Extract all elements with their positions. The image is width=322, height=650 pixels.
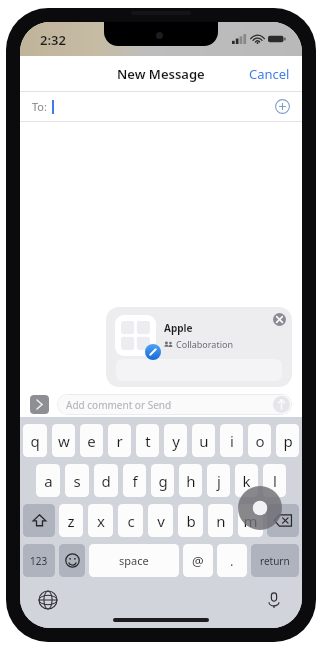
staticText: b	[186, 511, 196, 531]
button[interactable]: Emoji	[59, 544, 85, 577]
button[interactable]: k	[235, 464, 258, 497]
staticText: Apple	[164, 321, 193, 335]
staticText: i	[230, 431, 234, 451]
button[interactable]: Add contact	[275, 99, 290, 114]
staticText: .	[230, 552, 234, 570]
button[interactable]: Apple	[106, 307, 292, 387]
staticText: q	[30, 431, 40, 451]
button[interactable]: Remove attachment	[273, 313, 286, 326]
button[interactable]: @	[183, 544, 213, 577]
button[interactable]: f	[123, 464, 146, 497]
staticText: @	[192, 552, 204, 570]
staticText: 123	[30, 554, 48, 568]
button[interactable]: h	[179, 464, 202, 497]
button[interactable]: .	[217, 544, 247, 577]
button[interactable]: l	[263, 464, 286, 497]
staticText: d	[101, 471, 111, 491]
button[interactable]: p	[276, 424, 299, 457]
staticText: a	[44, 471, 53, 491]
button[interactable]: e	[80, 424, 103, 457]
staticText: space	[119, 553, 149, 568]
staticText: g	[158, 471, 168, 491]
staticText: y	[172, 431, 180, 451]
staticText: New Message	[117, 65, 205, 83]
button[interactable]: o	[248, 424, 271, 457]
button[interactable]: q	[23, 424, 47, 457]
button[interactable]: y	[164, 424, 187, 457]
button[interactable]: g	[151, 464, 174, 497]
button[interactable]: Shift	[23, 504, 55, 537]
staticText: u	[199, 431, 209, 451]
button[interactable]: s	[65, 464, 89, 497]
button[interactable]: t	[136, 424, 159, 457]
staticText: x	[97, 511, 105, 531]
button[interactable]: i	[220, 424, 243, 457]
staticText: r	[116, 431, 123, 451]
button[interactable]: v	[148, 504, 173, 537]
other: Send	[273, 396, 290, 413]
staticText: Cancel	[249, 65, 290, 83]
button[interactable]: d	[94, 464, 118, 497]
staticText: Add comment or Send	[66, 398, 172, 412]
button[interactable]: Cancel	[237, 59, 302, 89]
staticText: 2:32	[40, 31, 66, 49]
staticText: o	[255, 431, 265, 451]
staticText: f	[132, 471, 138, 491]
staticText: t	[145, 431, 151, 451]
button[interactable]: a	[36, 464, 60, 497]
button[interactable]: b	[178, 504, 203, 537]
button[interactable]: n	[208, 504, 233, 537]
staticText: c	[127, 511, 135, 531]
button[interactable]: u	[192, 424, 215, 457]
button[interactable]: Apps	[30, 395, 49, 414]
staticText: h	[186, 471, 196, 491]
staticText: m	[243, 511, 258, 531]
staticText: j	[217, 471, 221, 491]
button[interactable]: r	[108, 424, 131, 457]
button[interactable]: Backspace	[267, 504, 299, 537]
button[interactable]: 123	[23, 544, 55, 577]
staticText: s	[73, 471, 81, 491]
button[interactable]: Change keyboard	[38, 590, 58, 610]
button[interactable]: Add comment or Send	[57, 394, 292, 415]
staticText: return	[260, 554, 290, 568]
button[interactable]: c	[118, 504, 143, 537]
button[interactable]: m	[238, 504, 263, 537]
staticText: w	[58, 431, 70, 451]
button[interactable]: space	[89, 544, 179, 577]
staticText: v	[157, 511, 165, 531]
button[interactable]: w	[52, 424, 75, 457]
button[interactable]: return	[251, 544, 299, 577]
staticText: Collaboration	[176, 338, 233, 350]
staticText: l	[273, 471, 277, 491]
button[interactable]: z	[59, 504, 83, 537]
staticText: k	[242, 471, 251, 491]
button[interactable]: x	[88, 504, 113, 537]
staticText: e	[87, 431, 96, 451]
staticText: p	[283, 431, 293, 451]
staticText: To:	[32, 99, 47, 114]
staticText: n	[216, 511, 226, 531]
button[interactable]: Dictate	[264, 590, 284, 610]
staticText: z	[67, 511, 75, 531]
button[interactable]: To:	[20, 92, 302, 121]
button[interactable]: j	[207, 464, 230, 497]
